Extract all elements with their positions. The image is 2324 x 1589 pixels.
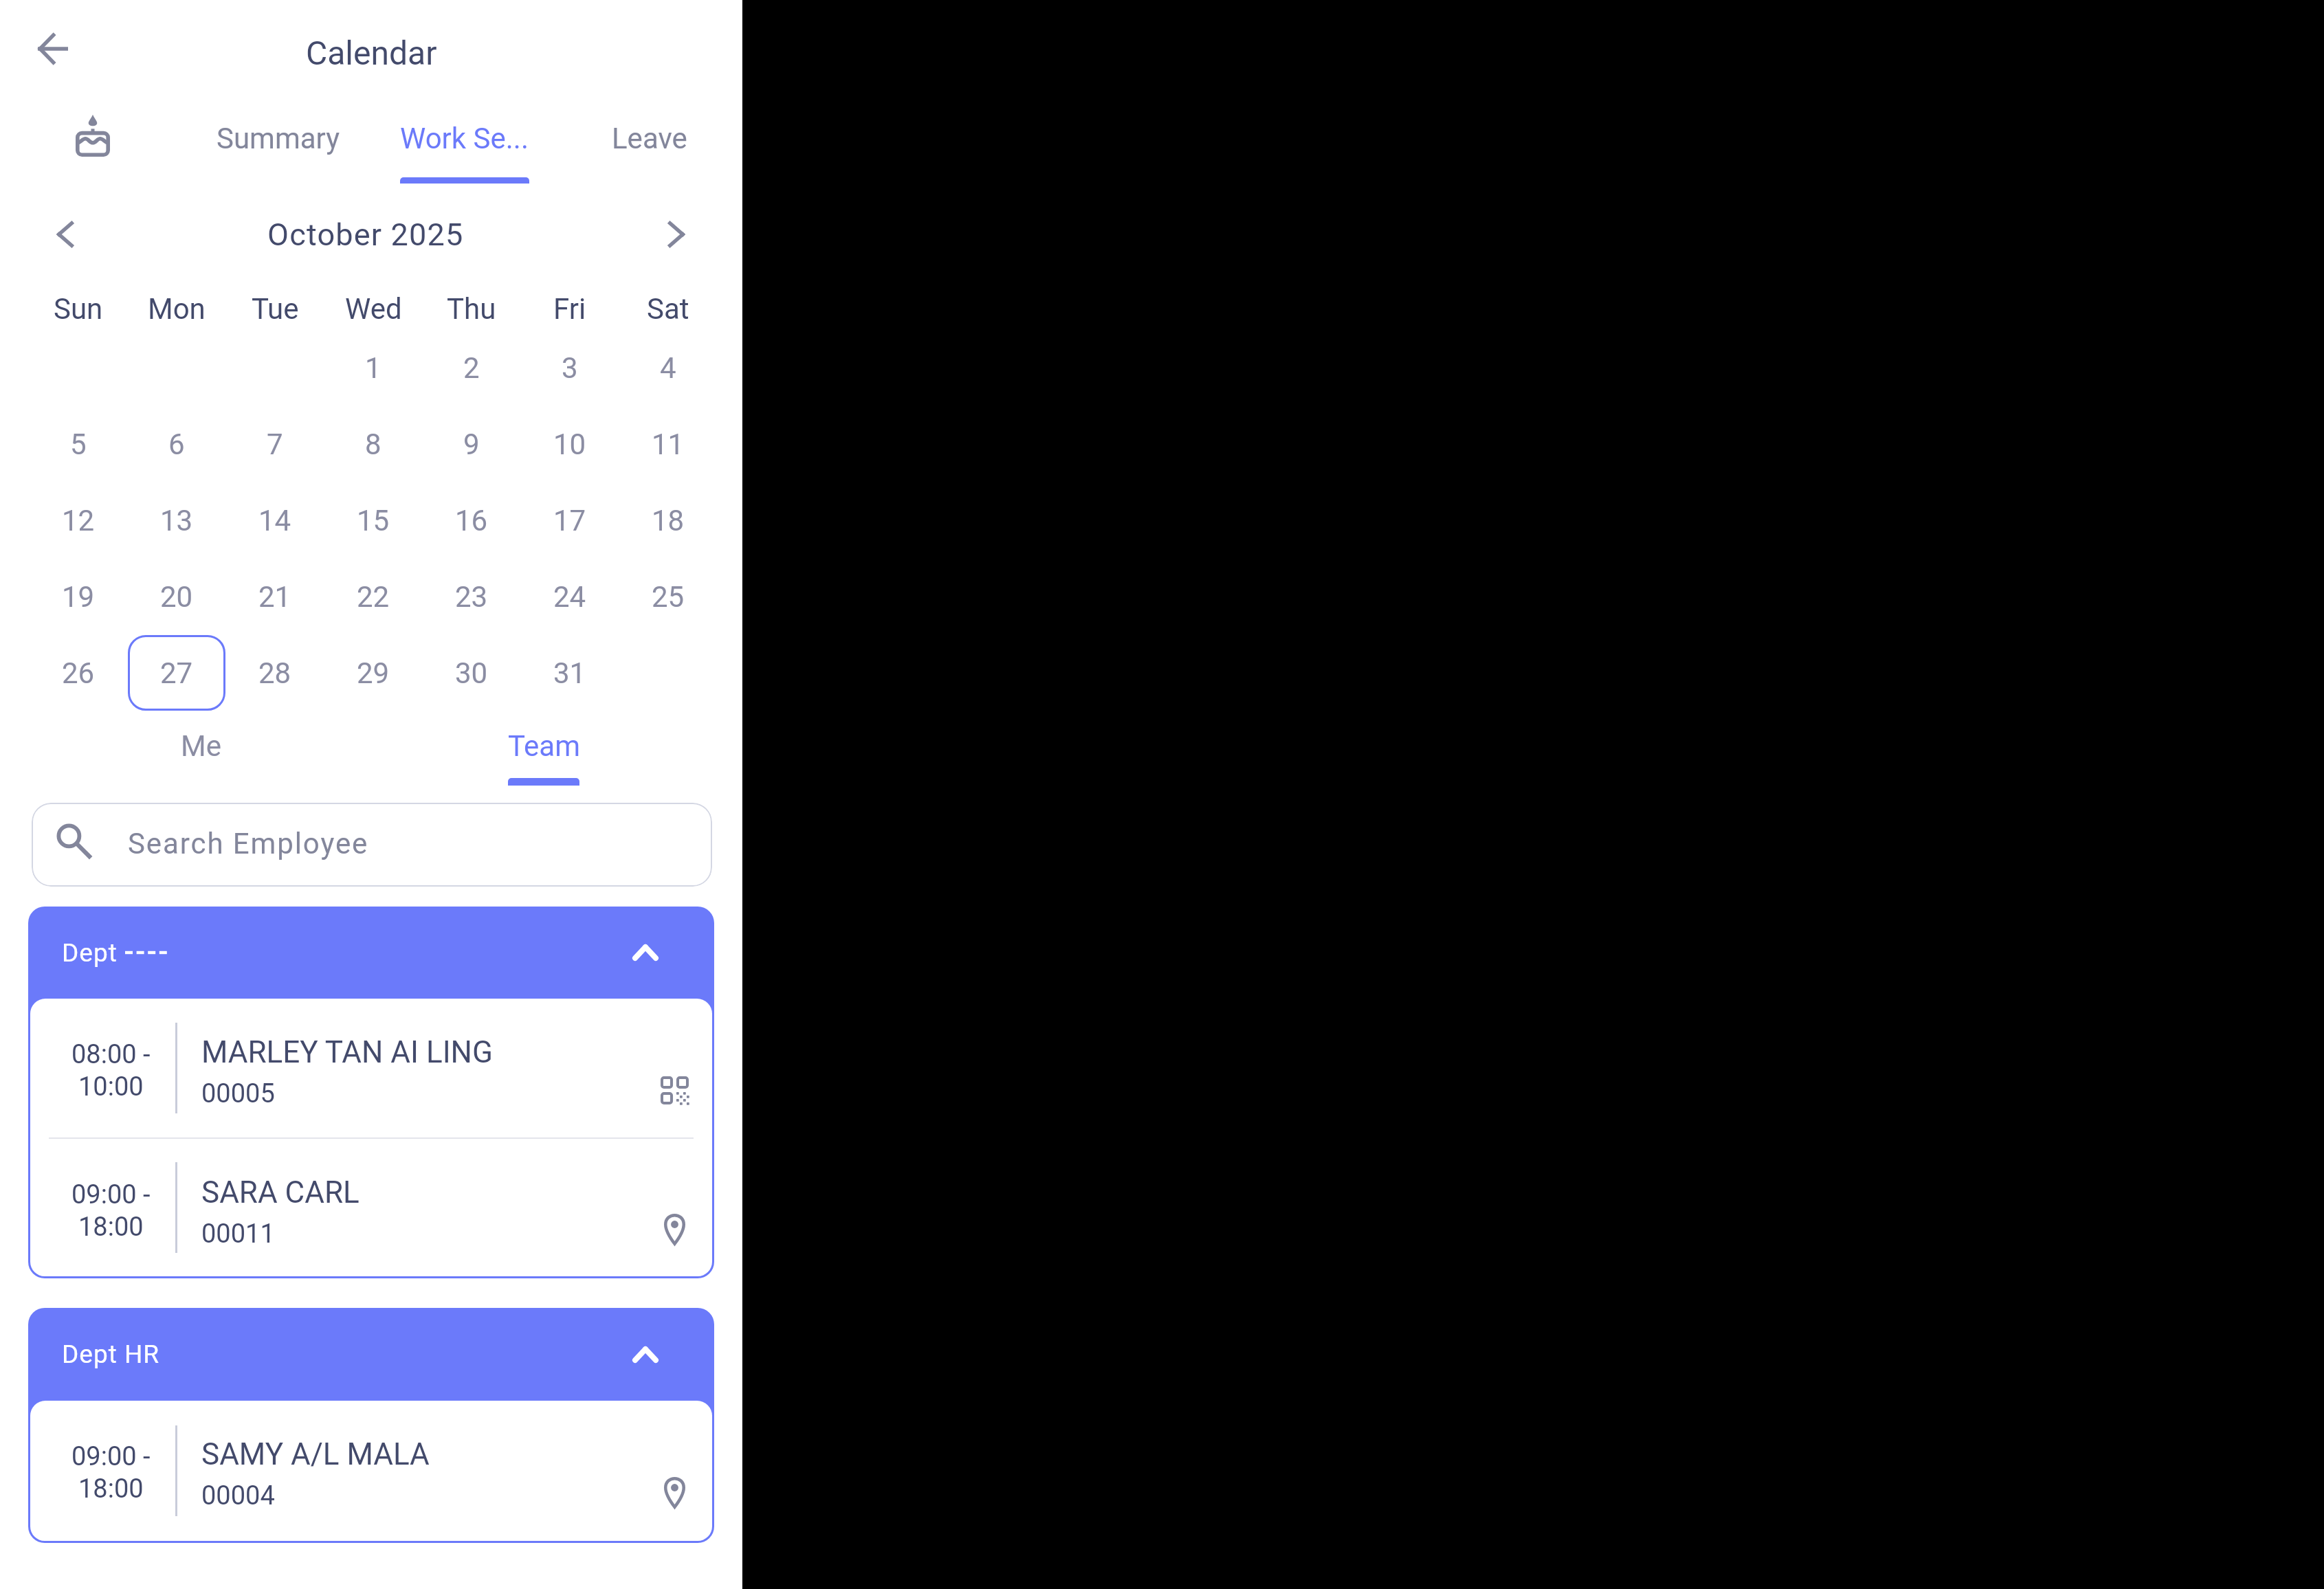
button[interactable]: 28 [226, 635, 324, 711]
staticText: Dept [62, 938, 118, 968]
button[interactable]: Search Employee [32, 803, 712, 887]
button[interactable]: 20 [128, 559, 225, 634]
button[interactable]: Location [648, 1467, 700, 1519]
staticText: MARLEY TAN AI LING [201, 1034, 493, 1070]
staticText: Search Employee [128, 827, 369, 860]
staticText: 25 [652, 580, 685, 614]
staticText: Me [181, 729, 221, 763]
button[interactable]: Work Se... [381, 117, 546, 159]
button[interactable]: Summary [196, 117, 361, 159]
button[interactable]: 1 [324, 330, 422, 405]
staticText: 31 [553, 656, 586, 690]
button[interactable]: 6 [128, 406, 225, 482]
button[interactable]: 12 [30, 482, 127, 558]
staticText: Leave [612, 122, 687, 155]
button[interactable]: Back [25, 21, 80, 76]
staticText: October 2025 [267, 216, 464, 253]
button[interactable]: 25 [619, 559, 717, 634]
staticText: 09:00 - [71, 1441, 151, 1472]
staticText: 10 [553, 427, 586, 461]
staticText: 30 [455, 656, 488, 690]
staticText: 15 [357, 504, 390, 537]
staticText: 18:00 [78, 1212, 144, 1243]
button[interactable]: 15 [324, 482, 422, 558]
staticText: 08:00 - [71, 1039, 151, 1070]
button[interactable]: 19 [30, 559, 127, 634]
staticText: Wed [345, 292, 402, 326]
button[interactable]: Leave [567, 117, 732, 159]
staticText: 19 [62, 580, 95, 614]
staticText: 00011 [201, 1219, 275, 1249]
button[interactable]: 29 [324, 635, 422, 711]
button[interactable]: 08:00 - [30, 999, 712, 1137]
staticText: 7 [267, 427, 283, 461]
staticText: 00004 [201, 1480, 275, 1511]
button[interactable]: Dept [28, 907, 714, 999]
staticText: 09:00 - [71, 1179, 151, 1210]
staticText: Team [508, 729, 580, 763]
button[interactable]: 30 [423, 635, 520, 711]
staticText: Calendar [306, 34, 437, 72]
button[interactable]: QR code [648, 1064, 700, 1116]
button[interactable]: 17 [521, 482, 619, 558]
button[interactable]: 24 [521, 559, 619, 634]
staticText: 23 [455, 580, 488, 614]
button[interactable]: 10 [521, 406, 619, 482]
button[interactable]: 8 [324, 406, 422, 482]
button[interactable]: 09:00 - [30, 1139, 712, 1276]
staticText: 5 [70, 427, 87, 461]
staticText: 22 [357, 580, 390, 614]
staticText: 18 [652, 504, 685, 537]
button[interactable]: 13 [128, 482, 225, 558]
staticText: 20 [160, 580, 193, 614]
staticText: 8 [365, 427, 381, 461]
button[interactable]: Location [648, 1203, 700, 1256]
button[interactable]: 5 [30, 406, 127, 482]
button[interactable]: Birthdays [65, 108, 120, 163]
button[interactable]: Collapse Dept ---- [626, 933, 665, 972]
staticText: SARA CARL [201, 1175, 359, 1210]
button[interactable]: 22 [324, 559, 422, 634]
button[interactable]: 3 [521, 330, 619, 405]
button[interactable]: 23 [423, 559, 520, 634]
staticText: Summary [217, 122, 340, 155]
button[interactable]: 9 [423, 406, 520, 482]
staticText: 16 [455, 504, 488, 537]
button[interactable]: Me [118, 724, 283, 768]
button[interactable]: 18 [619, 482, 717, 558]
button[interactable]: 11 [619, 406, 717, 482]
button[interactable]: Dept HR [28, 1308, 714, 1401]
staticText: 24 [553, 580, 586, 614]
staticText: Sun [54, 292, 103, 326]
staticText: 29 [357, 656, 390, 690]
staticText: 26 [62, 656, 95, 690]
staticText: Work Se... [400, 122, 529, 155]
button[interactable]: 26 [30, 635, 127, 711]
button[interactable]: 16 [423, 482, 520, 558]
button[interactable]: Team [461, 724, 626, 768]
staticText: Fri [553, 292, 586, 326]
button[interactable]: Next month [649, 207, 704, 262]
staticText: 18:00 [78, 1474, 144, 1504]
button[interactable]: Previous month [38, 207, 93, 262]
button[interactable]: 2 [423, 330, 520, 405]
button[interactable]: 09:00 - [30, 1401, 712, 1541]
staticText: 28 [258, 656, 291, 690]
staticText: Tue [252, 292, 299, 326]
button[interactable]: 21 [226, 559, 324, 634]
staticText: 27 [160, 656, 193, 690]
button[interactable]: Collapse Dept HR [626, 1335, 665, 1374]
staticText: 6 [168, 427, 185, 461]
staticText: 11 [652, 427, 685, 461]
staticText: 17 [553, 504, 586, 537]
staticText: 4 [660, 351, 676, 385]
button[interactable]: 4 [619, 330, 717, 405]
button[interactable]: 14 [226, 482, 324, 558]
button[interactable]: 27 [128, 635, 225, 711]
button[interactable]: 31 [521, 635, 619, 711]
staticText: 3 [562, 351, 578, 385]
staticText: 13 [160, 504, 193, 537]
staticText: 9 [463, 427, 480, 461]
button[interactable]: 7 [226, 406, 324, 482]
staticText: SAMY A/L MALA [201, 1436, 430, 1472]
